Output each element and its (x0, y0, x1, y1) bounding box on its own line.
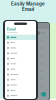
button[interactable] (5, 82, 36, 88)
button[interactable] (5, 93, 36, 98)
button[interactable]: Compose (41, 92, 46, 96)
button[interactable] (5, 51, 36, 56)
button[interactable] (5, 72, 36, 77)
staticText: Email (7, 27, 16, 31)
button[interactable] (5, 66, 36, 72)
button[interactable] (5, 35, 36, 40)
button[interactable] (5, 88, 36, 93)
button[interactable] (5, 45, 36, 51)
staticText: Email (22, 6, 34, 12)
staticText: Easily Manage (11, 1, 45, 6)
button[interactable] (5, 61, 36, 66)
button[interactable] (5, 40, 36, 45)
button[interactable] (5, 77, 36, 82)
button[interactable] (5, 56, 36, 61)
